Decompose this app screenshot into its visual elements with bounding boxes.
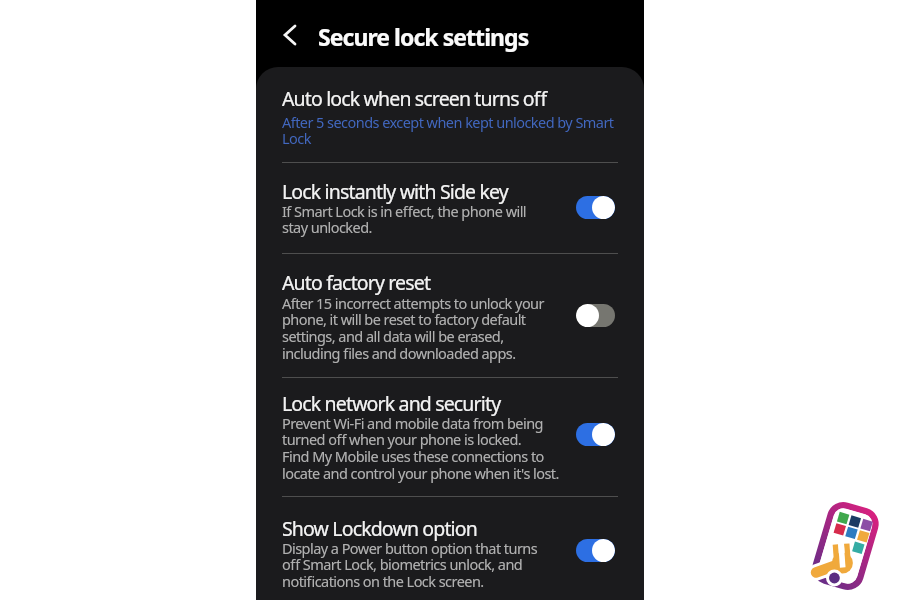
button[interactable] (576, 196, 615, 219)
button[interactable]: Show Lockdown option (256, 496, 644, 600)
staticText: If Smart Lock is in effect, the phone wi… (282, 201, 527, 238)
staticText: Auto lock when screen turns off (282, 85, 547, 112)
button[interactable] (280, 24, 302, 46)
button[interactable] (576, 423, 615, 446)
staticText: Show Lockdown option (282, 515, 477, 542)
button[interactable]: Auto lock when screen turns off (256, 70, 644, 162)
button[interactable] (576, 539, 615, 562)
staticText: Auto factory reset (282, 269, 431, 296)
staticText: Lock instantly with Side key (282, 178, 508, 205)
button[interactable]: Auto factory reset (256, 253, 644, 377)
staticText: After 5 seconds except when kept unlocke… (282, 112, 614, 149)
staticText: After 15 incorrect attempts to unlock yo… (282, 293, 544, 364)
staticText: Prevent Wi-Fi and mobile data from being… (282, 413, 559, 484)
button[interactable]: Lock network and security (256, 377, 644, 496)
button[interactable]: Lock instantly with Side key (256, 162, 644, 253)
button[interactable] (576, 304, 615, 327)
staticText: Lock network and security (282, 390, 501, 417)
staticText: Display a Power button option that turns… (282, 538, 538, 592)
staticText: Secure lock settings (318, 21, 529, 52)
